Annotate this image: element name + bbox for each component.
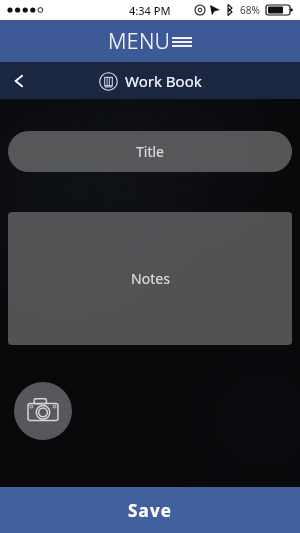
staticText: Title bbox=[136, 142, 164, 161]
button[interactable]: Title bbox=[8, 131, 292, 172]
staticText: Work Book bbox=[125, 71, 202, 91]
button[interactable]: Back bbox=[0, 62, 38, 99]
staticText: Notes bbox=[131, 269, 170, 288]
staticText: MENU bbox=[108, 27, 171, 56]
button[interactable]: MENU bbox=[0, 20, 300, 62]
button[interactable]: Add photo bbox=[14, 382, 72, 440]
staticText: Save bbox=[128, 499, 173, 522]
button[interactable]: Notes bbox=[8, 212, 292, 345]
button[interactable]: Save bbox=[0, 487, 300, 533]
staticText: 68% bbox=[240, 3, 260, 17]
staticText: 4:34 PM bbox=[129, 3, 171, 18]
